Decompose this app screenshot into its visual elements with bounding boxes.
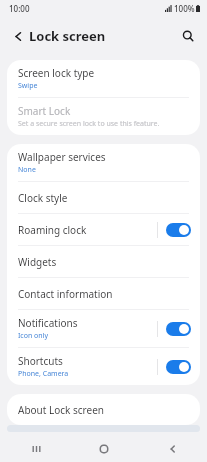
button[interactable]: Back — [5, 23, 31, 49]
staticText: Screen lock type — [18, 66, 95, 80]
staticText: 10:00 — [9, 3, 30, 14]
staticText: Contact information — [18, 287, 113, 301]
staticText: Clock style — [18, 191, 68, 205]
button[interactable]: Wallpaper services — [7, 144, 200, 181]
staticText: Widgets — [18, 255, 57, 269]
staticText: 100% — [174, 3, 195, 14]
button[interactable]: Search — [175, 23, 201, 49]
button[interactable]: Clock style — [7, 182, 200, 213]
staticText: Icon only — [18, 331, 49, 341]
staticText: Roaming clock — [18, 223, 87, 237]
staticText: Notifications — [18, 316, 78, 330]
button[interactable]: Roaming clock switch — [166, 223, 191, 237]
staticText: Phone, Camera — [18, 369, 69, 379]
button[interactable]: Home — [69, 436, 138, 462]
button[interactable]: Widgets — [7, 246, 200, 277]
button[interactable]: Recent apps — [0, 436, 69, 462]
staticText: About Lock screen — [18, 403, 104, 417]
staticText: Wallpaper services — [18, 150, 106, 164]
staticText: Smart Lock — [18, 104, 71, 118]
button[interactable]: Notifications switch — [166, 322, 191, 336]
button[interactable]: Smart Lock — [7, 98, 200, 135]
staticText: Shortcuts — [18, 354, 63, 368]
staticText: Set a secure screen lock to use this fea… — [18, 119, 160, 129]
staticText: Swipe — [18, 81, 38, 91]
button[interactable]: About Lock screen — [7, 394, 200, 425]
button[interactable]: Roaming clock — [7, 214, 200, 245]
button[interactable]: Shortcuts switch — [166, 360, 191, 374]
button[interactable]: Screen lock type — [7, 60, 200, 97]
button[interactable]: Back — [138, 436, 207, 462]
button[interactable]: Contact information — [7, 278, 200, 309]
button[interactable]: Shortcuts — [7, 348, 200, 385]
staticText: Lock screen — [29, 27, 106, 45]
staticText: None — [18, 165, 36, 175]
button[interactable]: Notifications — [7, 310, 200, 347]
